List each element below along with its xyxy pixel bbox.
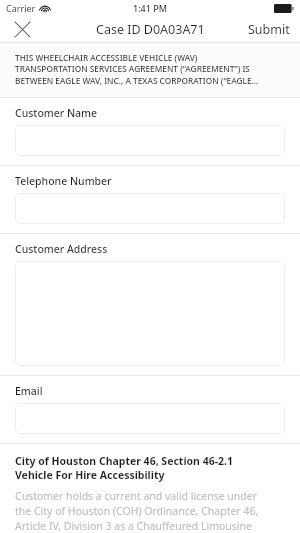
button[interactable]: Submit [238, 17, 300, 42]
staticText: Email [15, 384, 43, 398]
button[interactable]: Customer Address [0, 234, 300, 375]
staticText: Telephone Number [15, 174, 112, 188]
staticText: Carrier [6, 2, 36, 14]
staticText: 1:41 PM [133, 2, 167, 14]
staticText: Submit [248, 21, 290, 38]
staticText: Customer holds a current and valid licen… [15, 489, 259, 533]
staticText: City of Houston Chapter 46, Section 46-2… [15, 454, 233, 482]
staticText: Customer Address [15, 242, 108, 256]
staticText: Case ID D0A03A71 [96, 21, 205, 38]
staticText: THIS WHEELCHAIR ACCESSIBLE VEHICLE (WAV)… [15, 52, 259, 87]
button[interactable]: Telephone Number [0, 166, 300, 233]
button[interactable]: Close [8, 16, 36, 42]
button[interactable]: Email [0, 376, 300, 443]
button[interactable]: Customer Name [0, 98, 300, 165]
staticText: Customer Name [15, 106, 98, 120]
